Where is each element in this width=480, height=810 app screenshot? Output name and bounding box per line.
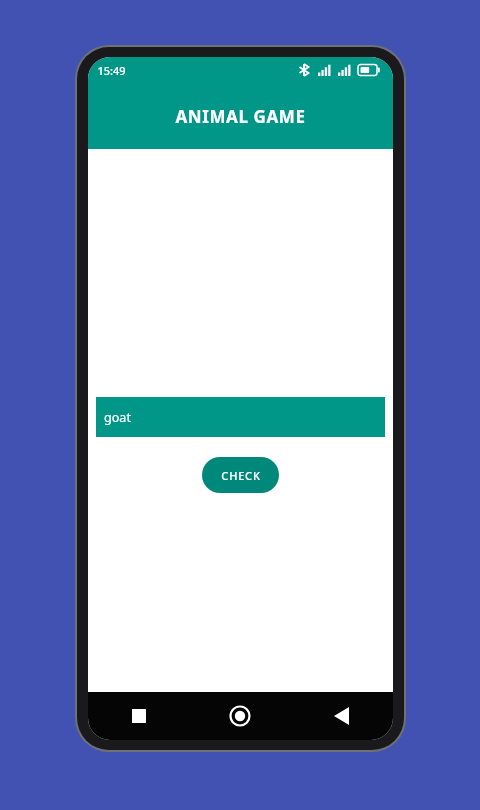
button[interactable]: goat xyxy=(96,397,385,437)
staticText: ANIMAL GAME xyxy=(175,105,306,128)
button[interactable]: Back xyxy=(291,692,393,740)
staticText: 15:49 xyxy=(97,63,126,78)
staticText: CHECK xyxy=(221,468,261,483)
button[interactable]: CHECK xyxy=(202,457,279,493)
button[interactable]: Recents xyxy=(88,692,189,740)
staticText: goat xyxy=(104,409,131,426)
button[interactable]: Home xyxy=(189,692,291,740)
